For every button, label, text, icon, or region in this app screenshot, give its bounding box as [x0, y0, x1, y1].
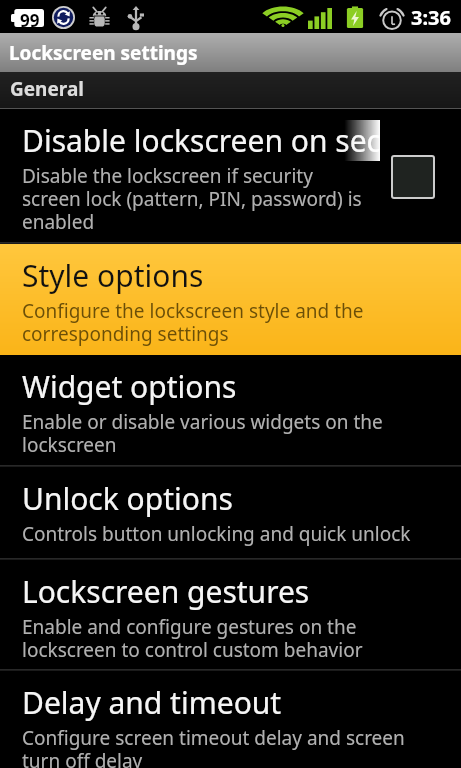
- staticText: Configure screen timeout delay and scree…: [22, 725, 405, 768]
- staticText: 99: [20, 9, 40, 27]
- staticText: Disable lockscreen on security: [22, 120, 380, 161]
- staticText: Unlock options: [22, 478, 233, 519]
- button[interactable]: Unlock options: [0, 467, 461, 560]
- button[interactable]: Lockscreen gestures: [0, 560, 461, 671]
- button[interactable]: Style options: [0, 244, 461, 355]
- staticText: Lockscreen gestures: [22, 571, 310, 612]
- staticText: Delay and timeout: [22, 682, 282, 723]
- button[interactable]: Delay and timeout: [0, 671, 461, 768]
- staticText: Controls button unlocking and quick unlo…: [22, 521, 411, 547]
- staticText: Configure the lockscreen style and the c…: [22, 298, 364, 347]
- staticText: Disable the lockscreen if security scree…: [22, 163, 362, 235]
- staticText: Enable or disable various widgets on the…: [22, 409, 383, 458]
- staticText: Widget options: [22, 366, 237, 407]
- button[interactable]: Widget options: [0, 355, 461, 467]
- staticText: Style options: [22, 255, 204, 296]
- staticText: 3:36: [411, 4, 451, 31]
- staticText: General: [10, 76, 84, 102]
- staticText: Enable and configure gestures on the loc…: [22, 614, 363, 663]
- staticText: Lockscreen settings: [9, 40, 198, 66]
- button[interactable]: Disable lockscreen on security: [0, 109, 461, 244]
